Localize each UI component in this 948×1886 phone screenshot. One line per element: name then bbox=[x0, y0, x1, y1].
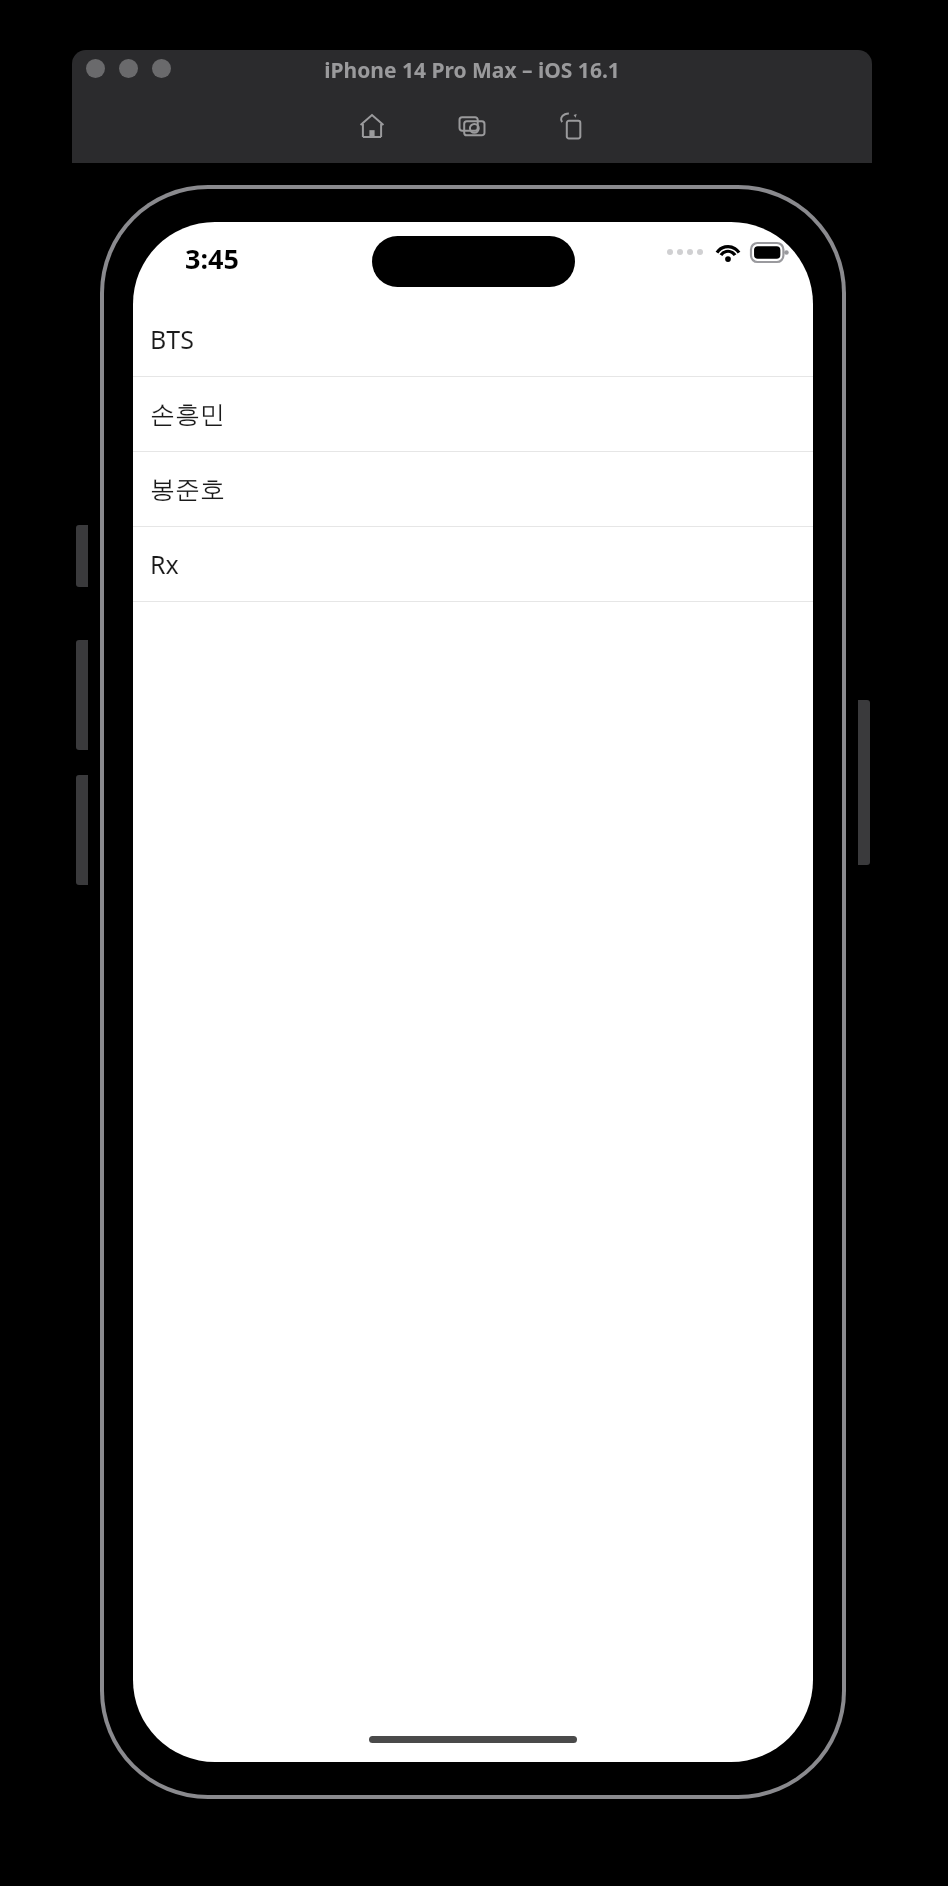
staticText: 손흥민 bbox=[150, 399, 225, 430]
button[interactable] bbox=[119, 59, 138, 78]
button[interactable]: BTS bbox=[133, 302, 813, 377]
staticText: 3:45 bbox=[185, 240, 239, 277]
staticText: 봉준호 bbox=[150, 474, 225, 505]
button[interactable]: 봉준호 bbox=[133, 452, 813, 527]
staticText: Rx bbox=[150, 547, 179, 581]
button[interactable]: Rotate bbox=[552, 106, 592, 146]
staticText: BTS bbox=[150, 322, 194, 356]
button[interactable]: Rx bbox=[133, 527, 813, 602]
button[interactable] bbox=[86, 59, 105, 78]
button[interactable]: Screenshot bbox=[452, 106, 492, 146]
button[interactable]: Home bbox=[352, 106, 392, 146]
button[interactable]: 손흥민 bbox=[133, 377, 813, 452]
staticText: iPhone 14 Pro Max – iOS 16.1 bbox=[324, 56, 620, 85]
button[interactable] bbox=[152, 59, 171, 78]
